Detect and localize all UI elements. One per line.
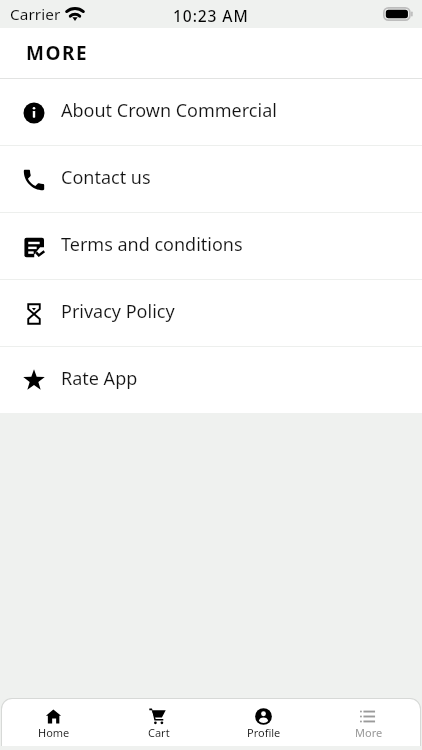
button[interactable]: Rate App: [0, 347, 422, 413]
staticText: Home: [38, 725, 70, 740]
button[interactable]: Home: [1, 698, 106, 746]
button[interactable]: Cart: [106, 698, 211, 746]
staticText: 10:23 AM: [173, 5, 249, 26]
staticText: Cart: [148, 725, 170, 740]
staticText: Terms and conditions: [61, 232, 243, 257]
button[interactable]: Profile: [211, 698, 316, 746]
staticText: Profile: [247, 725, 281, 740]
staticText: MORE: [26, 40, 89, 66]
staticText: Contact us: [61, 165, 151, 190]
button[interactable]: Contact us: [0, 146, 422, 213]
button[interactable]: Terms and conditions: [0, 213, 422, 280]
staticText: More: [355, 725, 383, 740]
staticText: Rate App: [61, 366, 138, 391]
button[interactable]: More: [316, 698, 421, 746]
staticText: Carrier: [10, 4, 61, 25]
staticText: Privacy Policy: [61, 299, 175, 324]
staticText: About Crown Commercial: [61, 98, 277, 123]
button[interactable]: Privacy Policy: [0, 280, 422, 347]
button[interactable]: About Crown Commercial: [0, 79, 422, 146]
